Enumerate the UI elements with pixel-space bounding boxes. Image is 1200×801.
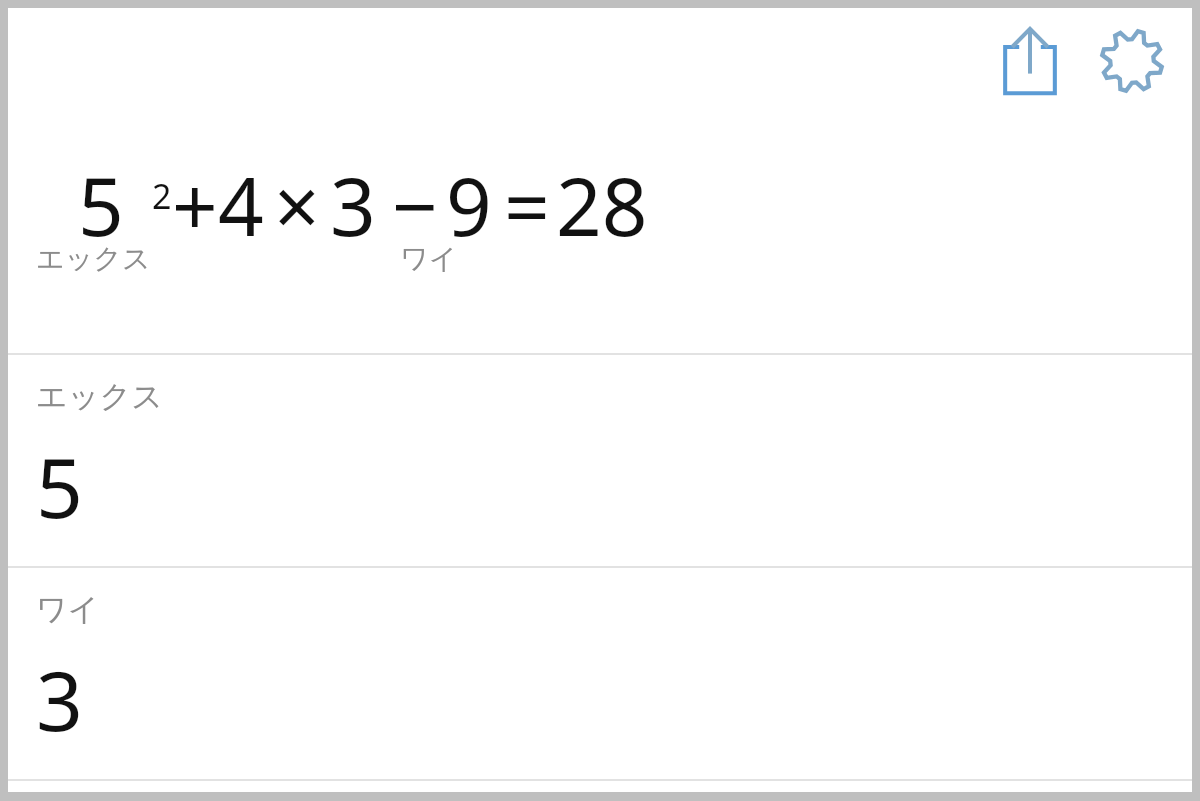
- staticText: 2: [152, 173, 172, 219]
- button[interactable]: 5: [8, 138, 1192, 353]
- staticText: エックス: [36, 241, 151, 276]
- staticText: ワイ: [36, 590, 100, 629]
- staticText: =: [504, 150, 550, 259]
- staticText: 3: [36, 643, 83, 755]
- staticText: ×: [274, 150, 320, 259]
- staticText: エックス: [36, 377, 163, 416]
- button[interactable]: エックス: [8, 355, 1192, 566]
- staticText: −: [392, 150, 438, 259]
- staticText: 28: [556, 150, 648, 259]
- staticText: ワイ: [400, 241, 458, 276]
- staticText: 5: [78, 150, 124, 259]
- staticText: 9: [446, 150, 492, 259]
- staticText: 4: [218, 150, 264, 259]
- button[interactable]: Share: [994, 25, 1066, 97]
- staticText: 3: [330, 150, 376, 259]
- button[interactable]: ワイ: [8, 568, 1192, 779]
- staticText: +: [172, 150, 218, 259]
- staticText: 5: [36, 430, 83, 542]
- button[interactable]: Settings: [1096, 25, 1168, 97]
